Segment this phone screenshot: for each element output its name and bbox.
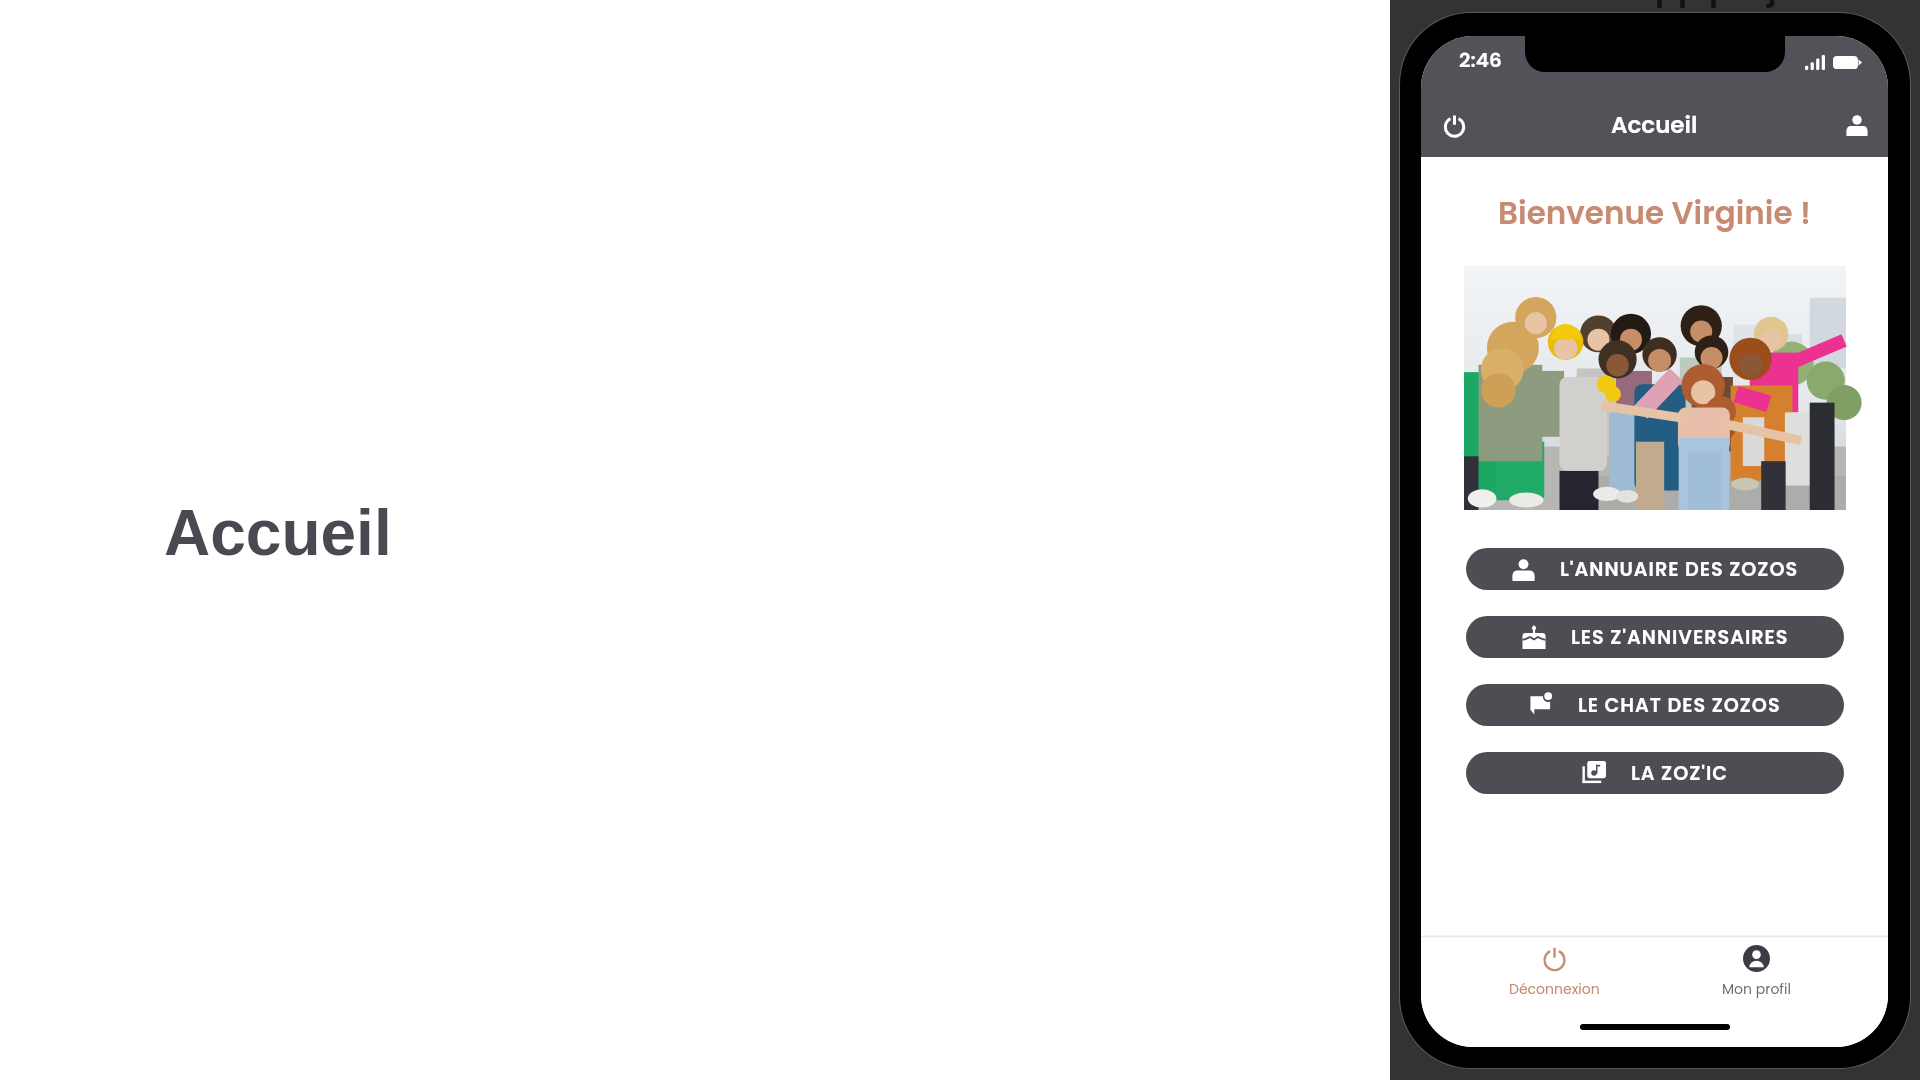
button[interactable]: LA ZOZ'IC bbox=[1466, 752, 1844, 794]
staticText: Bienvenue Virginie ! bbox=[1421, 191, 1888, 234]
staticText: Zoz'App projet bbox=[1566, 0, 1811, 11]
button[interactable]: LES Z'ANNIVERSAIRES bbox=[1466, 616, 1844, 658]
button[interactable]: Mon profil bbox=[1835, 103, 1879, 147]
staticText: Déconnexion bbox=[1509, 979, 1600, 999]
staticText: LE CHAT DES ZOZOS bbox=[1578, 692, 1781, 719]
staticText: L'ANNUAIRE DES ZOZOS bbox=[1560, 556, 1799, 583]
button[interactable]: LE CHAT DES ZOZOS bbox=[1466, 684, 1844, 726]
staticText: 2:46 bbox=[1459, 46, 1502, 74]
staticText: Accueil bbox=[1611, 109, 1698, 141]
staticText: Mon profil bbox=[1722, 979, 1791, 999]
button[interactable]: L'ANNUAIRE DES ZOZOS bbox=[1466, 548, 1844, 590]
staticText: LES Z'ANNIVERSAIRES bbox=[1571, 624, 1789, 651]
staticText: LA ZOZ'IC bbox=[1631, 760, 1729, 787]
staticText: Accueil bbox=[164, 497, 392, 569]
button[interactable]: Mon profil bbox=[1689, 938, 1823, 1006]
button[interactable]: Déconnexion bbox=[1487, 938, 1621, 1006]
button[interactable]: Déconnexion bbox=[1432, 103, 1476, 147]
